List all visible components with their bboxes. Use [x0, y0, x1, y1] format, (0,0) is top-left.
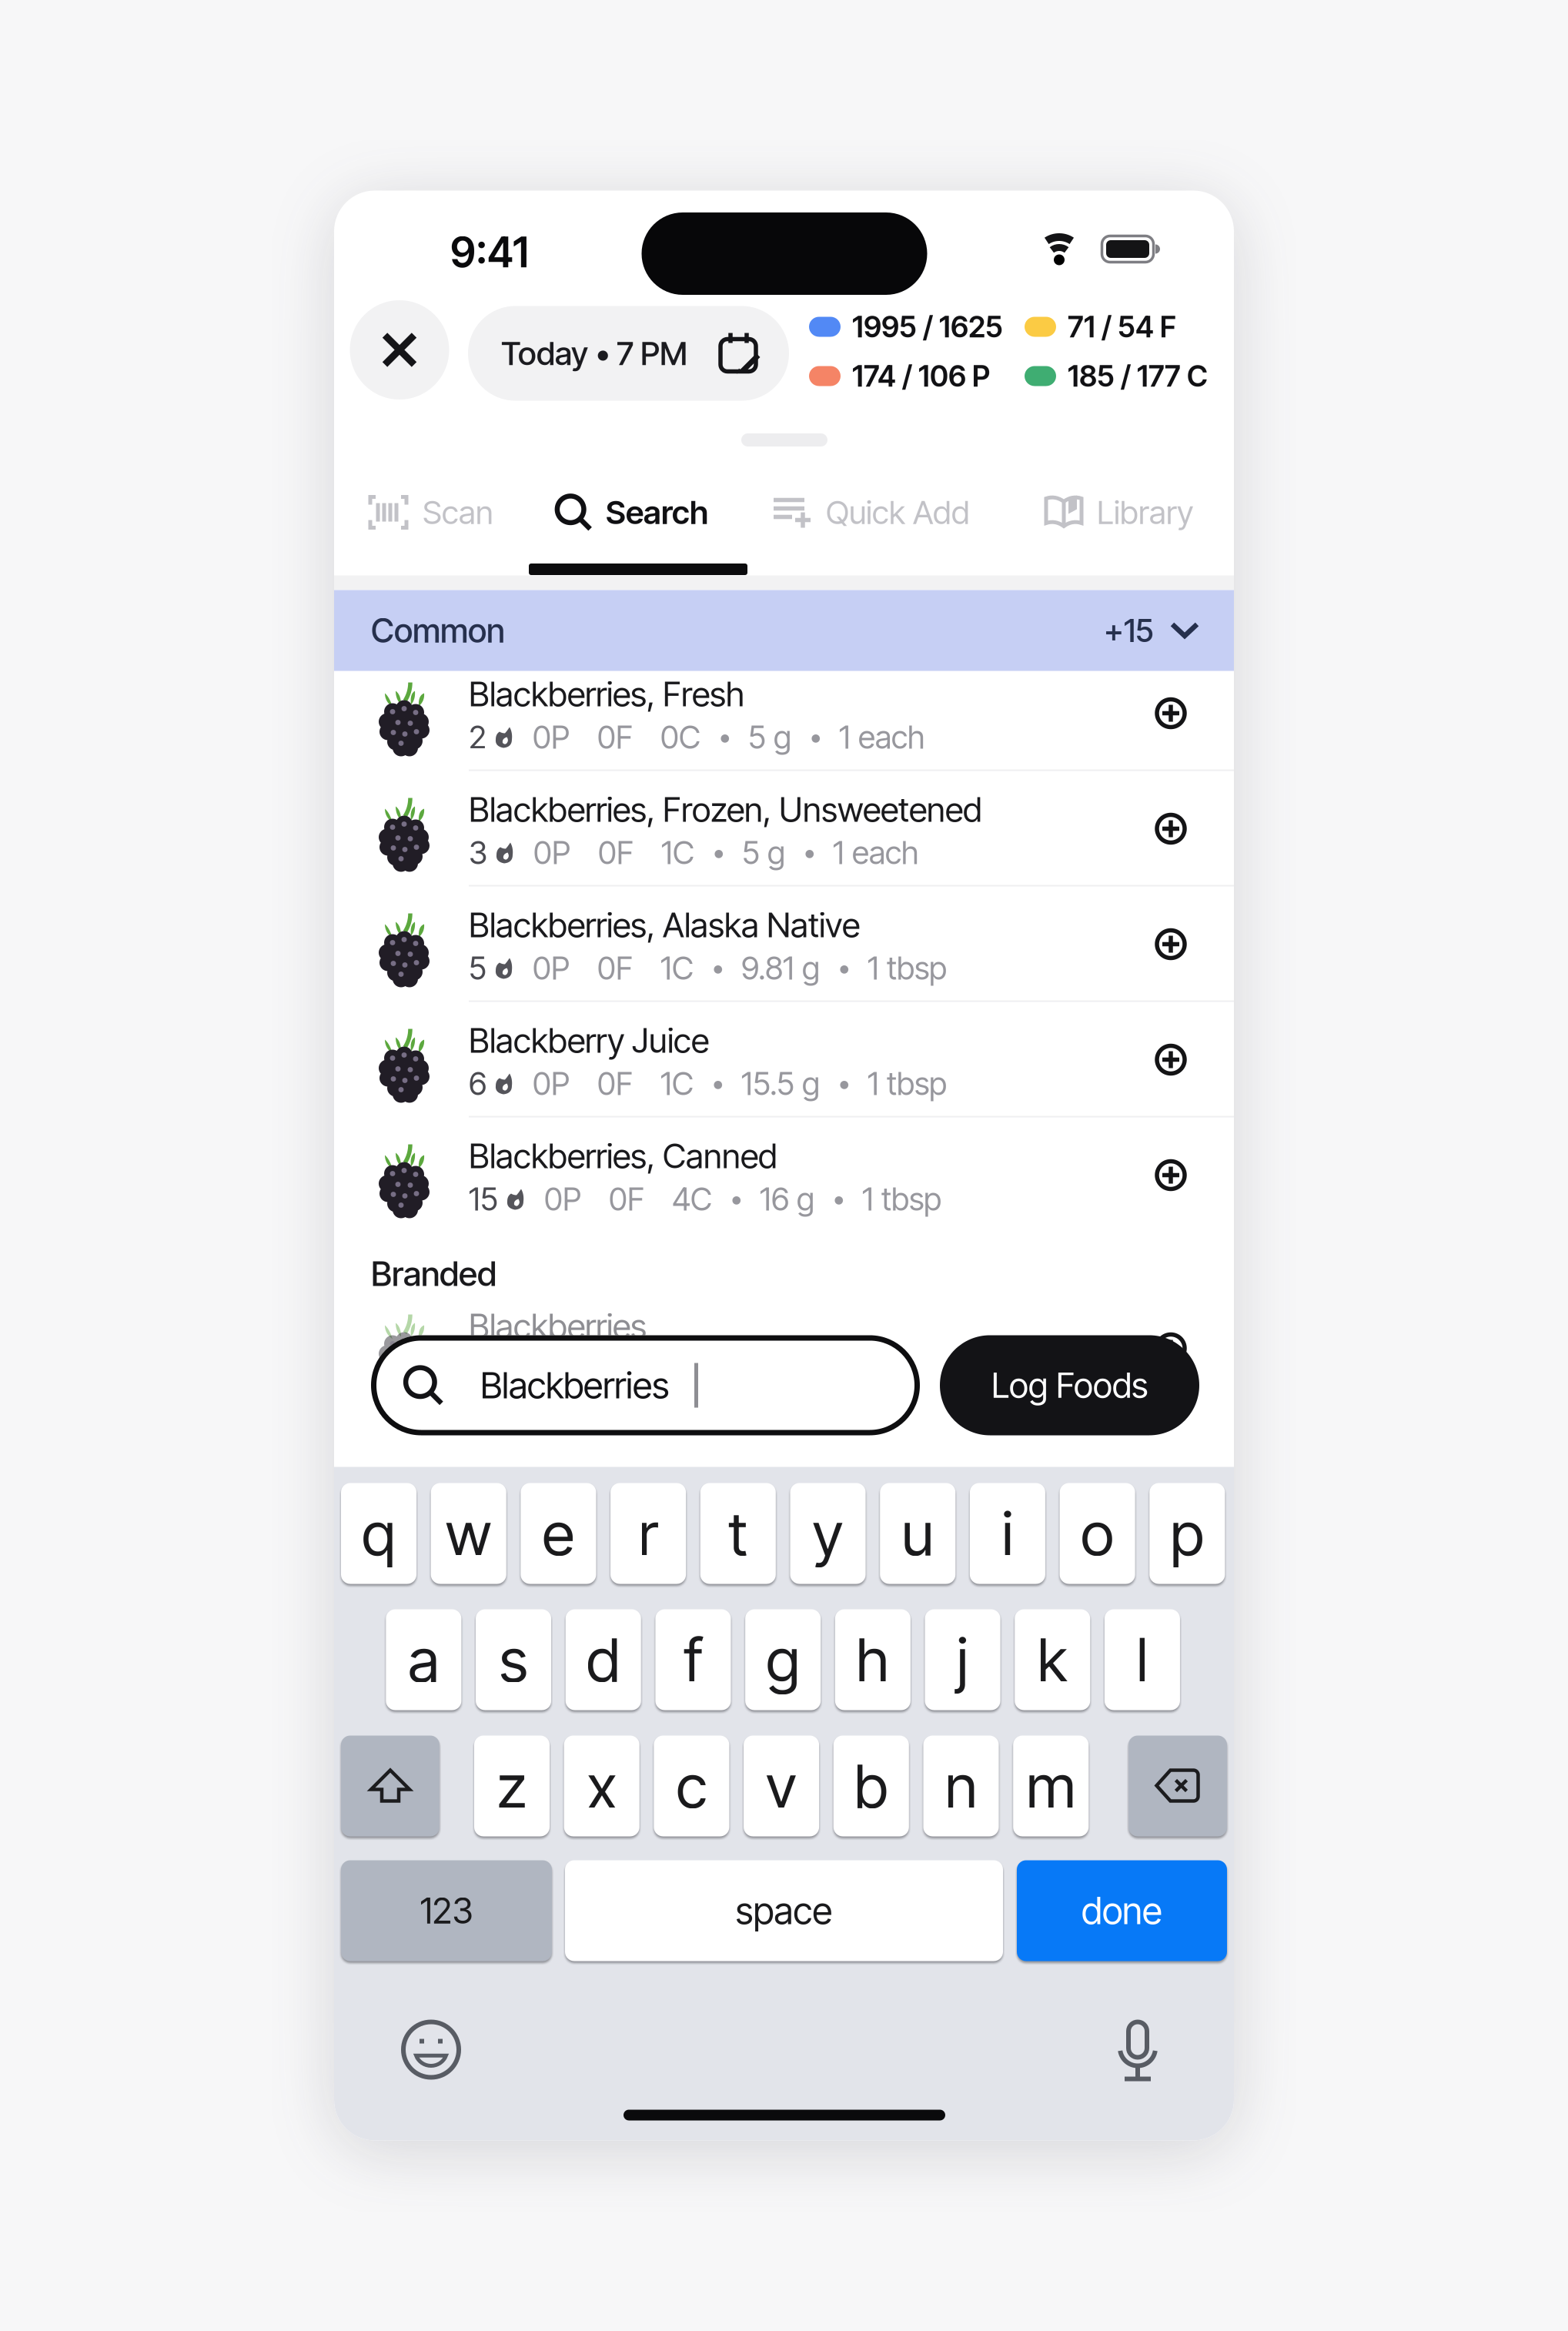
button[interactable]: r: [610, 1482, 686, 1585]
staticText: n: [945, 1750, 977, 1822]
staticText: 5: [469, 949, 486, 987]
button[interactable]: s: [476, 1608, 551, 1711]
staticText: 6: [469, 1064, 486, 1103]
staticText: 174 / 106 P: [852, 358, 990, 394]
button[interactable]: Today • 7 PM: [468, 306, 789, 401]
button[interactable]: [624, 2110, 945, 2120]
button[interactable]: w: [431, 1482, 506, 1585]
staticText: t: [728, 1497, 748, 1570]
staticText: •: [712, 837, 724, 868]
staticText: done: [1082, 1888, 1162, 1933]
staticText: e: [542, 1497, 575, 1570]
button[interactable]: Common: [334, 590, 1234, 671]
button[interactable]: [350, 300, 449, 400]
staticText: r: [639, 1497, 658, 1570]
staticText: Blackberries, Alaska Native: [469, 904, 860, 945]
staticText: 1C: [660, 1064, 694, 1103]
button[interactable]: t: [700, 1482, 776, 1585]
staticText: Library: [1097, 493, 1193, 532]
button[interactable]: space: [565, 1859, 1003, 1962]
button[interactable]: done: [1017, 1859, 1227, 1962]
button[interactable]: e: [521, 1482, 596, 1585]
staticText: 0F: [597, 949, 633, 987]
button[interactable]: u: [880, 1482, 955, 1585]
button[interactable]: [1155, 1159, 1187, 1191]
button[interactable]: n: [923, 1734, 999, 1838]
button[interactable]: [1155, 928, 1187, 960]
staticText: Scan: [423, 493, 493, 532]
button[interactable]: [1155, 813, 1187, 845]
staticText: •: [718, 721, 731, 753]
button[interactable]: c: [654, 1734, 729, 1838]
button[interactable]: Library: [1043, 488, 1193, 536]
button[interactable]: Scan: [366, 488, 493, 536]
button[interactable]: Quick Add: [772, 488, 970, 536]
button[interactable]: m: [1013, 1734, 1089, 1838]
staticText: 9:41: [450, 227, 529, 277]
staticText: 1 each: [839, 718, 924, 756]
button[interactable]: v: [744, 1734, 819, 1838]
staticText: Blackberries: [480, 1363, 669, 1407]
button[interactable]: [393, 2011, 470, 2088]
staticText: •: [809, 721, 821, 753]
button[interactable]: g: [745, 1608, 821, 1711]
staticText: o: [1081, 1497, 1114, 1570]
staticText: 0F: [598, 833, 634, 872]
staticText: 9.81 g: [741, 949, 820, 987]
button[interactable]: q: [341, 1482, 416, 1585]
staticText: 2: [469, 718, 486, 756]
button[interactable]: z: [474, 1734, 550, 1838]
button[interactable]: Blackberries, Frozen, Unsweetened: [334, 774, 1234, 890]
button[interactable]: p: [1149, 1482, 1225, 1585]
staticText: 1995 / 1625: [852, 309, 1003, 344]
staticText: 16 g: [760, 1180, 814, 1218]
button[interactable]: i: [970, 1482, 1045, 1585]
staticText: 123: [420, 1889, 473, 1932]
staticText: •: [837, 1068, 850, 1099]
staticText: Blackberries, Canned: [469, 1135, 777, 1176]
button[interactable]: Blackberries, Alaska Native: [334, 890, 1234, 1005]
staticText: space: [736, 1888, 832, 1933]
staticText: p: [1170, 1497, 1204, 1570]
button[interactable]: [1099, 2013, 1176, 2090]
button[interactable]: Blackberries: [371, 1335, 920, 1435]
button[interactable]: [1128, 1734, 1227, 1838]
staticText: l: [1137, 1623, 1148, 1696]
staticText: k: [1037, 1623, 1068, 1696]
staticText: •: [837, 952, 850, 984]
button[interactable]: l: [1105, 1608, 1180, 1711]
button[interactable]: o: [1060, 1482, 1135, 1585]
button[interactable]: Blackberries, Canned: [334, 1120, 1234, 1236]
button[interactable]: d: [566, 1608, 641, 1711]
staticText: •: [711, 952, 724, 984]
button[interactable]: [341, 1734, 440, 1838]
button[interactable]: Search: [555, 488, 708, 536]
staticText: 0F: [597, 718, 633, 756]
button[interactable]: Blackberries, Fresh: [334, 659, 1234, 774]
button[interactable]: f: [655, 1608, 731, 1711]
button[interactable]: b: [833, 1734, 909, 1838]
staticText: z: [497, 1750, 527, 1822]
staticText: Quick Add: [826, 493, 970, 532]
staticText: 1 each: [833, 833, 918, 872]
staticText: s: [499, 1623, 528, 1696]
staticText: q: [362, 1497, 396, 1570]
button[interactable]: Blackberry Juice: [334, 1005, 1234, 1120]
button[interactable]: [1155, 697, 1187, 729]
staticText: 0P: [533, 833, 570, 872]
button[interactable]: k: [1015, 1608, 1090, 1711]
staticText: f: [684, 1623, 702, 1696]
button[interactable]: y: [790, 1482, 866, 1585]
staticText: b: [854, 1750, 888, 1822]
staticText: d: [586, 1623, 620, 1696]
staticText: 0P: [533, 949, 570, 987]
button[interactable]: Log Foods: [940, 1335, 1199, 1435]
button[interactable]: 123: [341, 1859, 552, 1962]
staticText: •: [832, 1183, 844, 1215]
button[interactable]: a: [386, 1608, 461, 1711]
button[interactable]: j: [925, 1608, 1000, 1711]
button[interactable]: x: [564, 1734, 639, 1838]
staticText: u: [902, 1497, 934, 1570]
button[interactable]: [1155, 1043, 1187, 1076]
button[interactable]: h: [835, 1608, 910, 1711]
